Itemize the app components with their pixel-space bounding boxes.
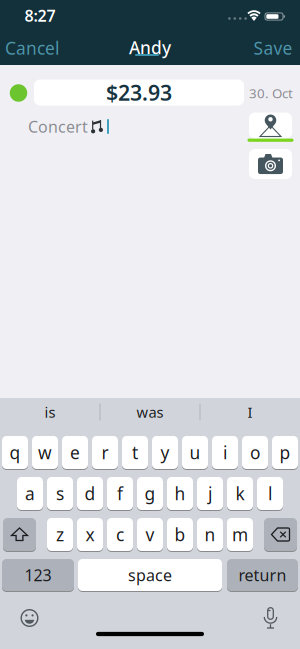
- staticText: $23.93: [106, 78, 172, 107]
- button[interactable]: Dictation: [264, 611, 277, 624]
- button[interactable]: d: [77, 476, 103, 510]
- staticText: y: [160, 441, 169, 464]
- button[interactable]: z: [47, 517, 73, 551]
- button[interactable]: b: [167, 517, 193, 551]
- staticText: o: [250, 441, 260, 464]
- staticText: u: [189, 441, 200, 464]
- button[interactable]: space: [78, 558, 222, 591]
- button[interactable]: c: [107, 517, 133, 551]
- button[interactable]: n: [197, 517, 223, 551]
- button[interactable]: Cancel: [5, 36, 59, 59]
- button[interactable]: x: [77, 517, 103, 551]
- button[interactable]: l: [257, 476, 283, 510]
- staticText: w: [38, 441, 52, 464]
- staticText: e: [70, 441, 80, 464]
- staticText: space: [128, 564, 172, 586]
- staticText: 123: [24, 564, 51, 586]
- staticText: Concert: [28, 116, 88, 137]
- staticText: q: [9, 441, 20, 464]
- button[interactable]: I: [202, 398, 298, 426]
- staticText: b: [174, 523, 185, 546]
- staticText: l: [268, 482, 272, 505]
- button[interactable]: t: [122, 435, 148, 469]
- staticText: I: [247, 402, 252, 422]
- button[interactable]: s: [47, 476, 73, 510]
- button[interactable]: y: [152, 435, 178, 469]
- button[interactable]: Delete: [264, 518, 297, 551]
- staticText: c: [116, 523, 124, 546]
- button[interactable]: h: [167, 476, 193, 510]
- button[interactable]: return: [227, 558, 298, 591]
- button[interactable]: was: [102, 398, 198, 426]
- button[interactable]: Save: [253, 36, 292, 59]
- staticText: Save: [253, 36, 292, 59]
- staticText: d: [84, 482, 95, 505]
- button[interactable]: o: [242, 435, 268, 469]
- button[interactable]: r: [92, 435, 118, 469]
- staticText: f: [117, 482, 123, 505]
- button[interactable]: Location: [249, 112, 292, 138]
- staticText: n: [204, 523, 215, 546]
- staticText: i: [223, 441, 227, 464]
- staticText: s: [56, 482, 64, 505]
- staticText: return: [238, 564, 286, 586]
- staticText: r: [101, 441, 108, 464]
- button[interactable]: m: [227, 517, 253, 551]
- staticText: is: [44, 402, 55, 422]
- staticText: v: [145, 523, 154, 546]
- staticText: h: [174, 482, 185, 505]
- button[interactable]: g: [137, 476, 163, 510]
- staticText: g: [144, 482, 155, 505]
- staticText: 8:27: [24, 5, 55, 26]
- button[interactable]: Emoji: [20, 609, 38, 627]
- staticText: j: [208, 482, 212, 505]
- staticText: m: [232, 523, 248, 546]
- button[interactable]: Camera: [249, 149, 292, 179]
- staticText: p: [279, 441, 290, 464]
- button[interactable]: j: [197, 476, 223, 510]
- button[interactable]: 123: [2, 558, 74, 591]
- staticText: Andy: [129, 36, 171, 59]
- staticText: Cancel: [5, 36, 59, 59]
- staticText: t: [132, 441, 138, 464]
- button[interactable]: a: [17, 476, 43, 510]
- staticText: was: [136, 402, 163, 422]
- button[interactable]: u: [182, 435, 208, 469]
- staticText: z: [56, 523, 64, 546]
- staticText: 30. Oct: [249, 84, 293, 102]
- button[interactable]: w: [32, 435, 58, 469]
- staticText: x: [85, 523, 94, 546]
- button[interactable]: is: [2, 398, 98, 426]
- button[interactable]: k: [227, 476, 253, 510]
- button[interactable]: Shift: [3, 518, 36, 551]
- button[interactable]: i: [212, 435, 238, 469]
- button[interactable]: v: [137, 517, 163, 551]
- staticText: a: [25, 482, 35, 505]
- button[interactable]: p: [272, 435, 298, 469]
- button[interactable]: e: [62, 435, 88, 469]
- button[interactable]: q: [2, 435, 28, 469]
- button[interactable]: f: [107, 476, 133, 510]
- staticText: k: [235, 482, 244, 505]
